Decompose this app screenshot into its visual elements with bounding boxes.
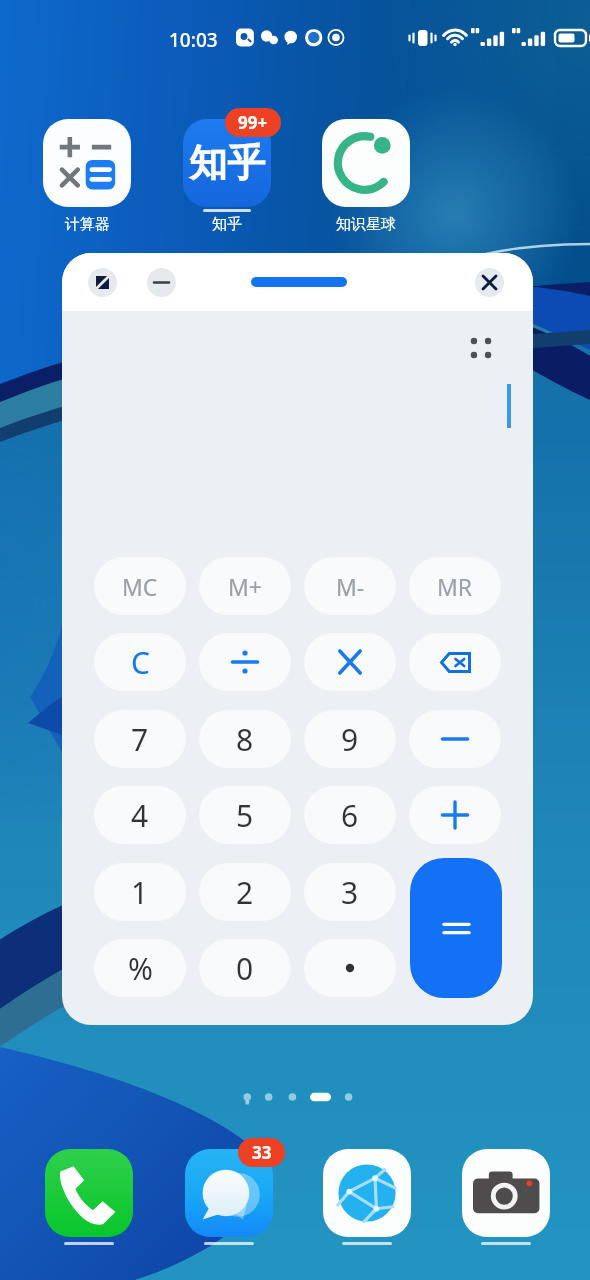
staticText: C <box>131 642 150 683</box>
button[interactable]: 2 <box>199 863 291 921</box>
button[interactable]: Minimize <box>147 268 176 297</box>
staticText: M- <box>336 571 365 602</box>
staticText: 知乎 <box>189 139 265 187</box>
staticText: 9 <box>341 719 359 760</box>
staticText: 知乎 <box>212 215 242 234</box>
staticText: % <box>128 948 153 989</box>
button[interactable] <box>199 633 291 691</box>
button[interactable]: Camera <box>462 1149 550 1237</box>
button[interactable]: 1 <box>94 863 186 921</box>
button[interactable]: MC <box>94 557 186 615</box>
button[interactable]: Backspace <box>409 633 501 691</box>
button[interactable] <box>409 710 501 768</box>
button[interactable]: 5 <box>199 786 291 844</box>
staticText: 99+ <box>238 111 268 134</box>
button[interactable]: 4 <box>94 786 186 844</box>
button[interactable]: Close <box>475 268 504 297</box>
staticText: 计算器 <box>65 215 110 234</box>
button[interactable]: 7 <box>94 710 186 768</box>
button[interactable]: MR <box>409 557 501 615</box>
button[interactable]: % <box>94 939 186 997</box>
staticText: 6 <box>341 795 359 836</box>
button[interactable]: Resize <box>465 332 497 364</box>
staticText: M+ <box>228 571 263 602</box>
button[interactable]: M- <box>304 557 396 615</box>
button[interactable]: 0 <box>199 939 291 997</box>
button[interactable]: Split screen <box>88 268 117 297</box>
button[interactable]: 9 <box>304 710 396 768</box>
button[interactable] <box>409 786 501 844</box>
button[interactable]: Browser <box>323 1149 411 1237</box>
button[interactable]: 知乎 <box>183 119 271 207</box>
staticText: 8 <box>236 719 254 760</box>
staticText: 33 <box>252 1141 272 1164</box>
other: Backspace <box>440 652 471 673</box>
staticText: 知识星球 <box>336 215 396 234</box>
staticText: MC <box>122 571 158 602</box>
button[interactable] <box>43 119 131 207</box>
staticText: 1 <box>131 872 149 913</box>
staticText: 0 <box>236 948 254 989</box>
button[interactable]: 6 <box>304 786 396 844</box>
staticText: 5 <box>236 795 254 836</box>
button[interactable]: 8 <box>199 710 291 768</box>
staticText: 3 <box>341 872 359 913</box>
button[interactable] <box>322 119 410 207</box>
button[interactable] <box>304 633 396 691</box>
button[interactable]: M+ <box>199 557 291 615</box>
staticText: MR <box>437 571 473 602</box>
button[interactable] <box>410 858 502 998</box>
button[interactable]: C <box>94 633 186 691</box>
button[interactable]: Drag window <box>251 277 347 287</box>
staticText: 10:03 <box>169 27 218 53</box>
button[interactable] <box>304 939 396 997</box>
button[interactable]: 3 <box>304 863 396 921</box>
button[interactable]: Messages <box>185 1149 273 1237</box>
staticText: 4 <box>131 795 149 836</box>
staticText: 7 <box>131 719 149 760</box>
staticText: 2 <box>236 872 254 913</box>
button[interactable]: Phone <box>45 1149 133 1237</box>
